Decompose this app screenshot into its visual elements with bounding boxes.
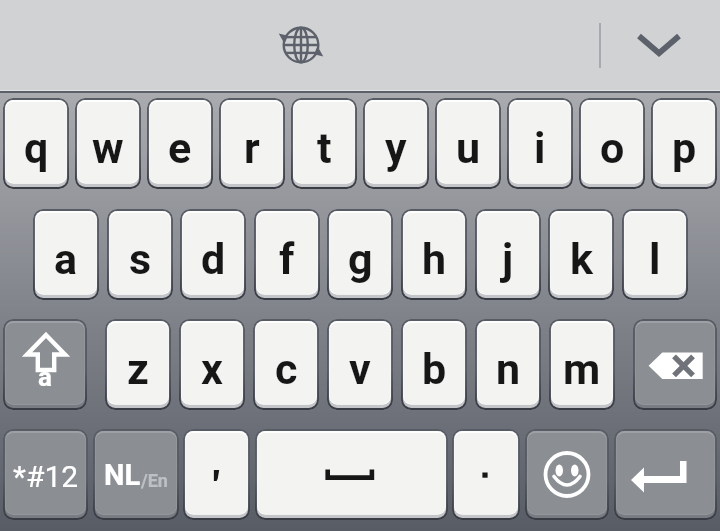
button[interactable]: w	[75, 98, 141, 189]
button[interactable]: u	[435, 98, 501, 189]
button[interactable]: x	[179, 319, 245, 410]
staticText: o	[600, 123, 625, 173]
staticText: z	[127, 344, 149, 394]
button[interactable]: i	[507, 98, 573, 189]
button[interactable]: a	[33, 209, 99, 300]
staticText: b	[422, 344, 447, 394]
staticText: j	[502, 234, 514, 284]
staticText: t	[317, 123, 332, 173]
button[interactable]: q	[3, 98, 69, 189]
staticText: m	[563, 344, 601, 394]
staticText: a	[54, 234, 78, 284]
button[interactable]: k	[548, 209, 614, 300]
staticText: e	[168, 123, 192, 173]
button[interactable]: r	[219, 98, 285, 189]
staticText: h	[422, 234, 447, 284]
staticText: p	[672, 123, 697, 173]
staticText: n	[496, 344, 521, 394]
button[interactable]: o	[579, 98, 645, 189]
staticText: y	[385, 123, 407, 173]
button[interactable]: *#12	[3, 429, 88, 520]
button[interactable]: d	[180, 209, 246, 300]
button[interactable]: h	[401, 209, 467, 300]
staticText: c	[275, 344, 298, 394]
button[interactable]: g	[327, 209, 393, 300]
staticText: k	[570, 234, 593, 284]
button[interactable]: j	[475, 209, 541, 300]
button[interactable]: Shift	[3, 319, 87, 410]
button[interactable]: t	[291, 98, 357, 189]
staticText: *#12	[13, 459, 79, 494]
staticText: a	[38, 362, 52, 392]
button[interactable]: l	[622, 209, 688, 300]
staticText: f	[279, 234, 295, 284]
button[interactable]: s	[107, 209, 173, 300]
staticText: q	[24, 123, 49, 173]
staticText: NL	[104, 458, 141, 492]
staticText: g	[348, 234, 373, 284]
button[interactable]: Emoji	[525, 429, 609, 520]
button[interactable]: p	[651, 98, 717, 189]
button[interactable]: Period	[452, 429, 520, 520]
button[interactable]: Switch input language	[93, 429, 179, 520]
staticText: u	[456, 123, 481, 173]
staticText: d	[201, 234, 226, 284]
staticText: /En	[141, 470, 168, 491]
button[interactable]: Backspace	[633, 319, 717, 410]
button[interactable]: Enter	[614, 429, 717, 520]
staticText: v	[349, 344, 371, 394]
button[interactable]: Change language	[267, 11, 335, 79]
button[interactable]: Space	[255, 429, 448, 520]
button[interactable]: c	[253, 319, 319, 410]
button[interactable]: b	[401, 319, 467, 410]
staticText: l	[649, 234, 661, 284]
staticText: x	[201, 344, 223, 394]
button[interactable]: z	[105, 319, 171, 410]
staticText: r	[244, 123, 260, 173]
button[interactable]: v	[327, 319, 393, 410]
staticText: s	[129, 234, 152, 284]
button[interactable]: n	[475, 319, 541, 410]
button[interactable]: m	[549, 319, 615, 410]
button[interactable]: f	[254, 209, 320, 300]
staticText: w	[92, 123, 124, 173]
button[interactable]: y	[363, 98, 429, 189]
button[interactable]: Comma	[183, 429, 250, 520]
button[interactable]: Hide keyboard	[625, 11, 693, 79]
staticText: i	[534, 123, 546, 173]
button[interactable]: e	[147, 98, 213, 189]
